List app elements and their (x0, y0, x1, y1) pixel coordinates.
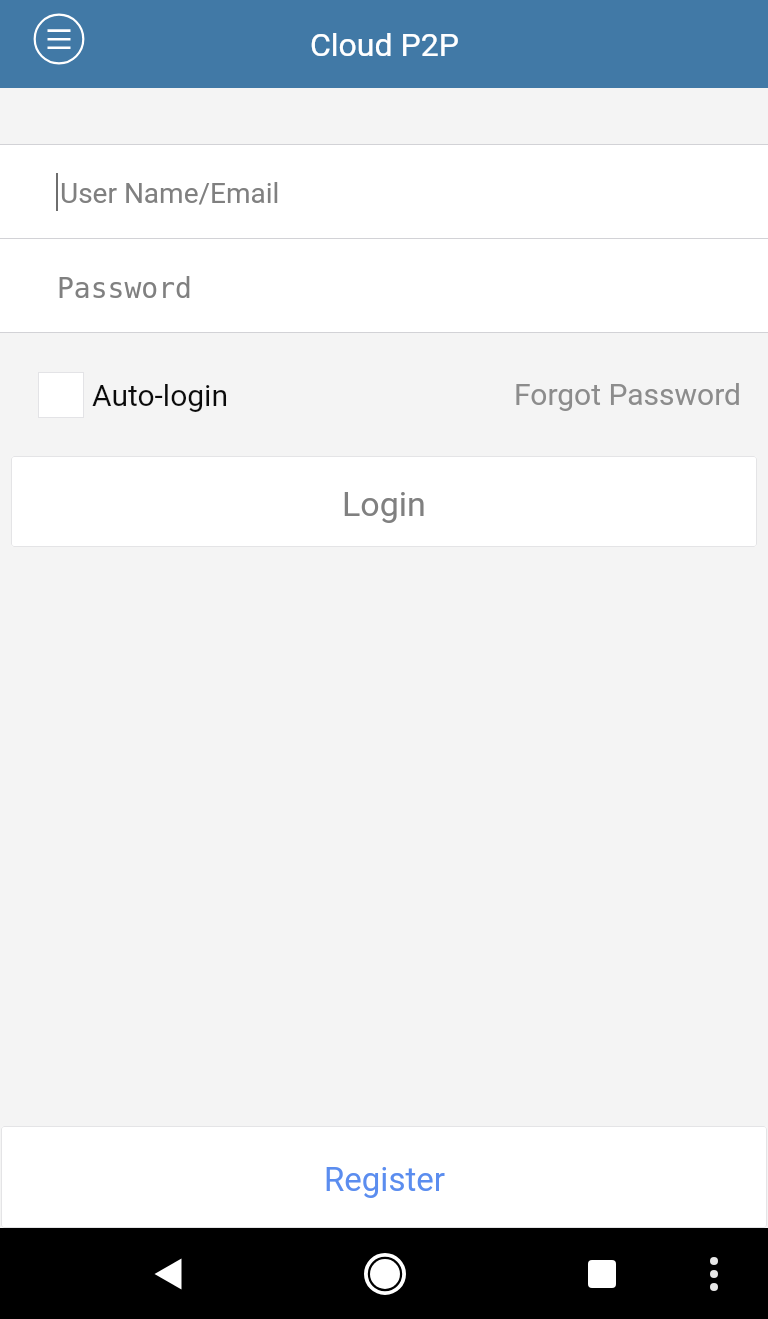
button[interactable]: User Name/Email (0, 145, 768, 238)
button[interactable]: Auto-login (38, 372, 228, 418)
staticText: Forgot Password (514, 377, 741, 412)
button[interactable]: More options (682, 1242, 746, 1306)
staticText: Password (57, 272, 192, 305)
staticText: Auto-login (92, 378, 228, 413)
staticText: Register (324, 1160, 445, 1199)
staticText: Login (342, 484, 426, 524)
button[interactable]: Recent apps (570, 1242, 634, 1306)
button[interactable]: Back (136, 1242, 200, 1306)
button[interactable]: Menu (27, 7, 91, 71)
button[interactable]: Register (1, 1126, 767, 1228)
button[interactable]: Home (353, 1242, 417, 1306)
staticText: User Name/Email (60, 177, 280, 210)
button[interactable]: Password (0, 239, 768, 332)
staticText: Cloud P2P (310, 26, 459, 64)
button[interactable]: Login (11, 456, 757, 547)
button[interactable]: Forgot Password (514, 377, 768, 412)
